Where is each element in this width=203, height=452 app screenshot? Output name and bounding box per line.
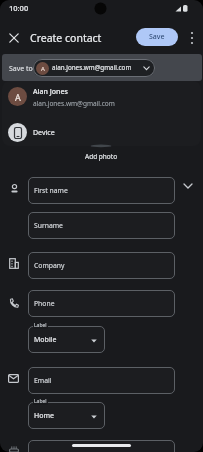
- button[interactable]: A: [33, 59, 155, 77]
- staticText: Label: [34, 398, 47, 405]
- staticText: A: [41, 65, 45, 73]
- button[interactable]: [5, 29, 23, 47]
- button[interactable]: First name: [28, 177, 175, 204]
- button[interactable]: [186, 30, 198, 46]
- button[interactable]: Phone: [28, 290, 175, 317]
- staticText: First name: [34, 186, 68, 195]
- staticText: 10:00: [9, 3, 29, 13]
- staticText: Save to: [9, 64, 33, 74]
- button[interactable]: [28, 440, 175, 452]
- staticText: Home: [34, 411, 54, 421]
- staticText: Surname: [34, 221, 63, 230]
- button[interactable]: Device: [2, 118, 201, 146]
- staticText: Save: [149, 32, 165, 42]
- staticText: A: [15, 91, 21, 103]
- button[interactable]: Email: [28, 367, 175, 394]
- staticText: Create contact: [30, 31, 102, 45]
- button[interactable]: Mobile: [28, 326, 105, 353]
- staticText: Phone: [34, 299, 55, 308]
- button[interactable]: Add photo: [85, 152, 118, 161]
- staticText: alan.jones.wm@gmail.com: [33, 99, 115, 108]
- staticText: alan.jones.wm@gmail.com: [52, 63, 132, 72]
- button[interactable]: Save: [136, 28, 178, 46]
- button[interactable]: A: [2, 84, 201, 114]
- staticText: Device: [33, 128, 55, 138]
- staticText: Mobile: [34, 335, 57, 345]
- button[interactable]: Home: [28, 402, 105, 429]
- button[interactable]: [182, 180, 194, 192]
- staticText: Alan Jones: [33, 87, 68, 97]
- staticText: Label: [34, 322, 47, 329]
- button[interactable]: Company: [28, 252, 175, 279]
- staticText: Email: [34, 376, 52, 385]
- staticText: Company: [34, 261, 65, 270]
- button[interactable]: Surname: [28, 212, 175, 239]
